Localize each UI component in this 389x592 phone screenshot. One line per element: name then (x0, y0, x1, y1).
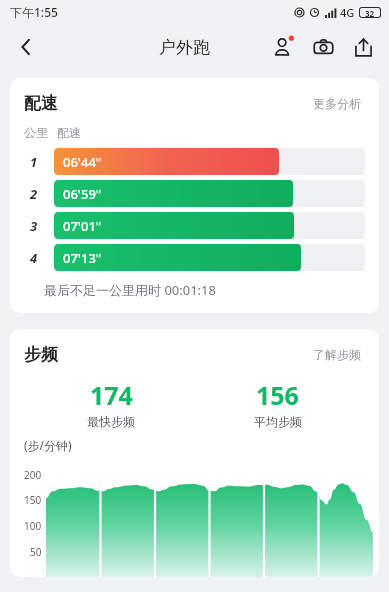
staticText: 步频 (24, 344, 58, 365)
staticText: 配速 (57, 125, 81, 140)
staticText: 06'44" (63, 153, 102, 171)
staticText: 150 (24, 493, 42, 507)
staticText: 1 (30, 153, 38, 171)
staticText: 2 (30, 185, 38, 203)
staticText: 07'13" (63, 249, 102, 267)
button[interactable]: Friends (263, 27, 303, 67)
staticText: 07'01" (63, 217, 102, 235)
staticText: 平均步频 (254, 414, 302, 429)
staticText: 06'59" (63, 185, 102, 203)
button[interactable]: 了解步频 (309, 343, 365, 366)
staticText: 了解步频 (313, 347, 361, 362)
button[interactable]: Share (343, 27, 383, 67)
button[interactable]: 更多分析 (309, 92, 365, 115)
button[interactable]: Back (4, 25, 48, 69)
staticText: 32 (365, 8, 375, 17)
staticText: 户外跑 (159, 37, 210, 58)
staticText: 4 (30, 249, 38, 267)
staticText: 最后不足一公里用时 00:01:18 (44, 281, 216, 299)
staticText: 100 (24, 519, 42, 533)
staticText: 200 (24, 468, 42, 482)
staticText: 公里 (24, 125, 48, 140)
staticText: 更多分析 (313, 96, 361, 111)
staticText: 配速 (24, 93, 58, 114)
staticText: 50 (30, 545, 42, 559)
staticText: 174 (90, 378, 133, 412)
staticText: 最快步频 (87, 414, 135, 429)
staticText: 下午1:55 (10, 4, 58, 20)
staticText: 3 (30, 217, 38, 235)
staticText: 4G (340, 5, 355, 20)
staticText: (步/分钟) (24, 437, 72, 453)
staticText: 156 (256, 378, 299, 412)
button[interactable]: Camera (303, 27, 343, 67)
